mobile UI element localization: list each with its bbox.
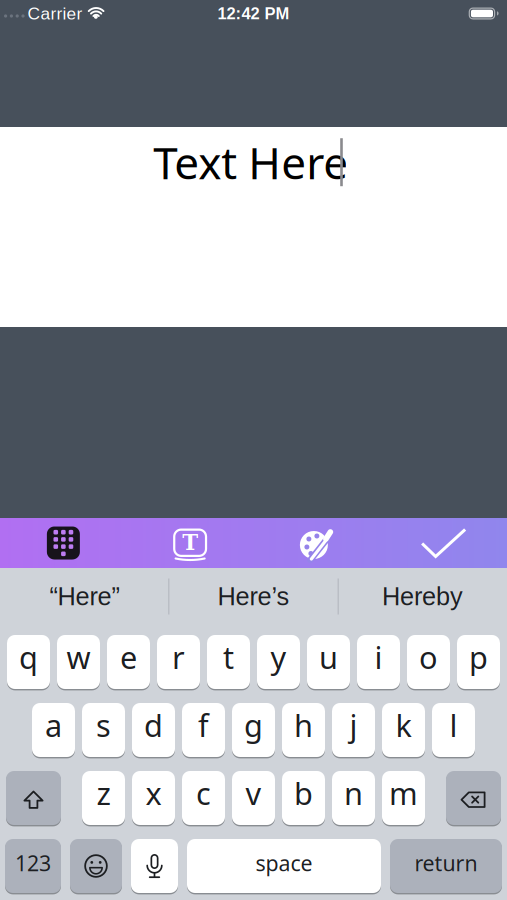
staticText: b [294,773,313,813]
staticText: f [198,705,209,745]
button[interactable]: y [257,635,300,689]
button[interactable]: t [207,635,250,689]
button[interactable] [380,518,507,568]
staticText: p [469,637,488,677]
button[interactable]: Hereby [338,568,507,625]
staticText: space [255,849,312,877]
staticText: v [245,773,261,813]
button[interactable]: “Here” [0,568,169,625]
staticText: l [449,705,457,745]
staticText: T [182,530,198,555]
staticText: m [389,773,418,813]
button[interactable]: q [7,635,50,689]
staticText: u [319,637,338,677]
button[interactable]: k [382,703,425,757]
button[interactable]: r [157,635,200,689]
button[interactable]: o [407,635,450,689]
button[interactable]: d [132,703,175,757]
button[interactable] [253,518,380,568]
button[interactable]: 123 [5,839,61,893]
staticText: r [172,637,185,677]
button[interactable]: f [182,703,225,757]
button[interactable]: w [57,635,100,689]
button[interactable]: n [332,771,375,825]
button[interactable] [0,518,127,568]
button[interactable]: i [357,635,400,689]
button[interactable] [70,839,122,893]
staticText: d [144,705,163,745]
staticText: t [223,637,234,677]
staticText: 123 [15,849,51,877]
button[interactable] [131,839,178,893]
button[interactable]: s [82,703,125,757]
button[interactable]: T [127,518,254,568]
button[interactable]: p [457,635,500,689]
staticText: y [270,637,286,677]
button[interactable]: z [82,771,125,825]
staticText: Hereby [382,582,463,611]
staticText: n [344,773,363,813]
button[interactable]: a [32,703,75,757]
button[interactable]: c [182,771,225,825]
button[interactable]: space [187,839,381,893]
staticText: q [19,637,38,677]
staticText: k [395,705,411,745]
staticText: c [196,773,211,813]
button[interactable]: x [132,771,175,825]
staticText: 12:42 PM [217,4,289,23]
button[interactable]: j [332,703,375,757]
staticText: w [66,637,90,677]
staticText: o [419,637,438,677]
button[interactable] [446,771,501,825]
staticText: Carrier [28,4,83,23]
staticText: i [374,637,382,677]
staticText: h [294,705,313,745]
staticText: return [414,849,477,877]
staticText: g [244,705,263,745]
staticText: “Here” [49,582,119,611]
button[interactable] [6,771,61,825]
staticText: Text Here [153,133,348,191]
button[interactable]: b [282,771,325,825]
staticText: a [45,705,62,745]
staticText: s [96,705,111,745]
button[interactable]: h [282,703,325,757]
button[interactable]: g [232,703,275,757]
button[interactable]: l [432,703,475,757]
button[interactable]: return [390,839,502,893]
staticText: e [120,637,137,677]
button[interactable]: e [107,635,150,689]
staticText: x [145,773,161,813]
button[interactable]: m [382,771,425,825]
staticText: Here’s [217,582,289,611]
button[interactable]: v [232,771,275,825]
staticText: z [96,773,110,813]
button[interactable]: Here’s [169,568,338,625]
button[interactable]: u [307,635,350,689]
staticText: j [349,705,357,745]
